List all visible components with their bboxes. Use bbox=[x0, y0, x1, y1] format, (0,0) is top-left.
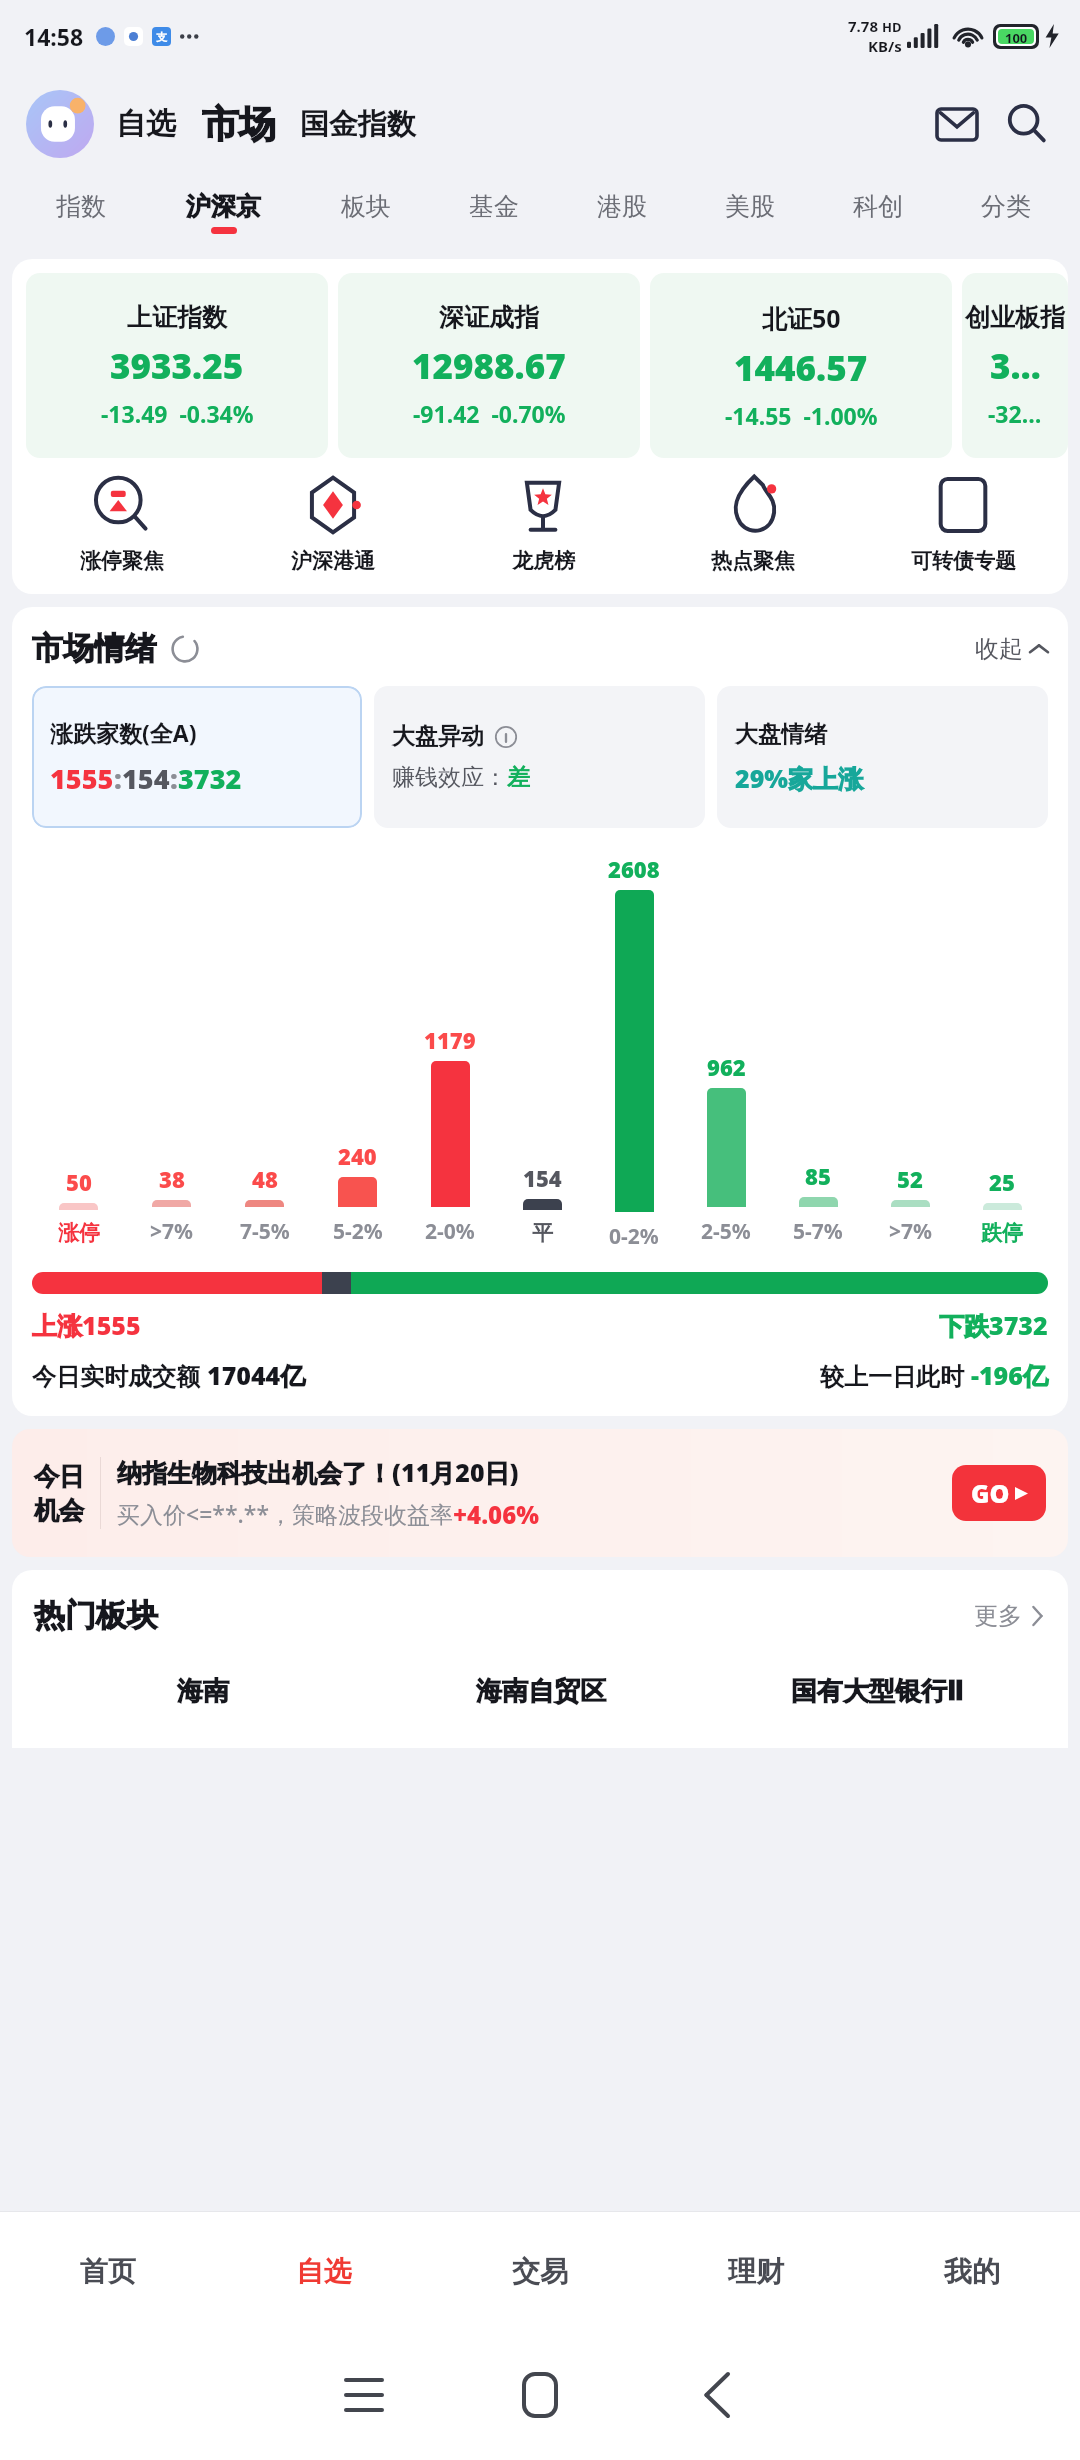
staticText: 理财 bbox=[728, 2254, 784, 2289]
staticText: 涨停聚焦 bbox=[80, 548, 164, 574]
button[interactable]: 美股 bbox=[686, 176, 814, 248]
staticText: 港股 bbox=[597, 191, 647, 222]
staticText: 2-0% bbox=[425, 1217, 475, 1246]
button[interactable]: 更多 bbox=[974, 1601, 1046, 1631]
staticText: 大盘异动 bbox=[392, 722, 484, 751]
staticText: 海南 bbox=[177, 1675, 229, 1708]
staticText: 涨停 bbox=[58, 1220, 100, 1246]
staticText: 科创 bbox=[853, 191, 903, 222]
button[interactable]: 分类 bbox=[942, 176, 1070, 248]
staticText: 北证50 bbox=[762, 301, 841, 335]
staticText: 154 bbox=[122, 760, 170, 797]
staticText: : bbox=[170, 760, 178, 797]
staticText: +4.06% bbox=[453, 1498, 539, 1531]
button[interactable]: Recents bbox=[309, 2340, 419, 2450]
staticText: 17044亿 bbox=[207, 1358, 306, 1392]
staticText: 分类 bbox=[981, 191, 1031, 222]
staticText: 今日实时成交额 bbox=[32, 1359, 207, 1392]
staticText: 可转债专题 bbox=[911, 548, 1016, 574]
staticText: 今日 bbox=[34, 1461, 84, 1492]
button[interactable]: Messages bbox=[930, 97, 984, 151]
staticText: 板块 bbox=[341, 191, 391, 222]
staticText: : bbox=[114, 760, 122, 797]
button[interactable]: 指数 bbox=[16, 176, 145, 248]
staticText: 赚钱效应： bbox=[392, 763, 507, 792]
button[interactable]: 今日 bbox=[12, 1429, 1068, 1557]
button[interactable]: 沪深京 bbox=[145, 176, 302, 248]
button[interactable]: 可转债专题 bbox=[858, 474, 1068, 574]
button[interactable]: Back bbox=[661, 2340, 771, 2450]
staticText: 2608 bbox=[608, 854, 660, 884]
staticText: >7% bbox=[889, 1217, 932, 1246]
staticText: 国金指数 bbox=[300, 106, 416, 143]
staticText: 154 bbox=[523, 1163, 562, 1193]
staticText: 大盘情绪 bbox=[735, 720, 827, 749]
button[interactable]: 涨停聚焦 bbox=[16, 474, 227, 574]
staticText: 下跌3732 bbox=[939, 1308, 1048, 1342]
staticText: -13.49 -0.34% bbox=[101, 398, 254, 429]
button[interactable]: 大盘情绪 bbox=[717, 686, 1048, 828]
button[interactable]: 市场 bbox=[202, 101, 276, 148]
staticText: 3933.25 bbox=[110, 342, 244, 390]
staticText: 2-5% bbox=[701, 1217, 751, 1246]
staticText: 自选 bbox=[116, 105, 176, 143]
staticText: 上证指数 bbox=[127, 302, 227, 333]
button[interactable]: 收起 bbox=[975, 634, 1048, 664]
staticText: 自选 bbox=[296, 2254, 352, 2289]
staticText: 5-2% bbox=[333, 1217, 383, 1246]
button[interactable]: 基金 bbox=[430, 176, 558, 248]
staticText: 50 bbox=[66, 1167, 92, 1197]
staticText: 市场情绪 bbox=[32, 629, 156, 668]
staticText: 1179 bbox=[424, 1025, 476, 1055]
staticText: 我的 bbox=[944, 2254, 1000, 2289]
button[interactable]: Refresh bbox=[170, 634, 200, 664]
button[interactable]: 板块 bbox=[302, 176, 430, 248]
staticText: 1446.57 bbox=[734, 344, 868, 392]
button[interactable]: 我的 bbox=[864, 2212, 1080, 2330]
staticText: 100 bbox=[1005, 29, 1028, 44]
staticText: 基金 bbox=[469, 191, 519, 222]
staticText: >7% bbox=[150, 1217, 193, 1246]
button[interactable]: 首页 bbox=[0, 2212, 216, 2330]
staticText: 12988.67 bbox=[412, 342, 566, 390]
staticText: 热点聚焦 bbox=[711, 548, 795, 574]
button[interactable]: Search bbox=[1000, 97, 1054, 151]
staticText: 机会 bbox=[34, 1495, 84, 1526]
staticText: 涨跌家数(全A) bbox=[50, 717, 197, 748]
button[interactable]: 科创 bbox=[814, 176, 942, 248]
button[interactable]: 大盘异动 bbox=[374, 686, 705, 828]
button[interactable]: Home bbox=[485, 2340, 595, 2450]
staticText: 3732 bbox=[178, 760, 242, 797]
button[interactable]: 龙虎榜 bbox=[438, 474, 648, 574]
button[interactable]: GO bbox=[952, 1465, 1046, 1521]
button[interactable]: 深证成指 bbox=[338, 273, 640, 458]
staticText: 支 bbox=[156, 30, 167, 44]
button[interactable]: 创业板指 bbox=[962, 273, 1068, 458]
staticText: 深证成指 bbox=[439, 302, 539, 333]
staticText: 市场 bbox=[202, 101, 276, 148]
staticText: 收起 bbox=[975, 634, 1023, 664]
button[interactable]: 自选 bbox=[216, 2212, 432, 2330]
staticText: 较上一日此时 bbox=[820, 1359, 971, 1392]
button[interactable]: 理财 bbox=[648, 2212, 864, 2330]
staticText: 3… bbox=[990, 342, 1041, 390]
button[interactable]: 沪深港通 bbox=[227, 474, 438, 574]
button[interactable]: 国金指数 bbox=[300, 106, 416, 143]
button[interactable]: 交易 bbox=[432, 2212, 648, 2330]
staticText: 交易 bbox=[512, 2254, 568, 2289]
button[interactable]: 港股 bbox=[558, 176, 686, 248]
staticText: 买入价<=**.**，策略波段收益率 bbox=[117, 1498, 453, 1529]
button[interactable]: 自选 bbox=[116, 105, 176, 143]
staticText: 48 bbox=[252, 1164, 278, 1194]
staticText: HD bbox=[882, 18, 902, 36]
staticText: 1555 bbox=[50, 760, 114, 797]
button[interactable]: 上证指数 bbox=[26, 273, 328, 458]
staticText: 纳指生物科技出机会了！(11月20日) bbox=[117, 1455, 519, 1489]
staticText: KB/s bbox=[868, 36, 902, 56]
button[interactable]: Profile bbox=[26, 90, 94, 158]
button[interactable]: 热点聚焦 bbox=[648, 474, 858, 574]
button[interactable]: 北证50 bbox=[650, 273, 952, 458]
staticText: 85 bbox=[805, 1161, 831, 1191]
staticText: 热门板块 bbox=[34, 1596, 158, 1635]
button[interactable]: 涨跌家数(全A) bbox=[32, 686, 362, 828]
